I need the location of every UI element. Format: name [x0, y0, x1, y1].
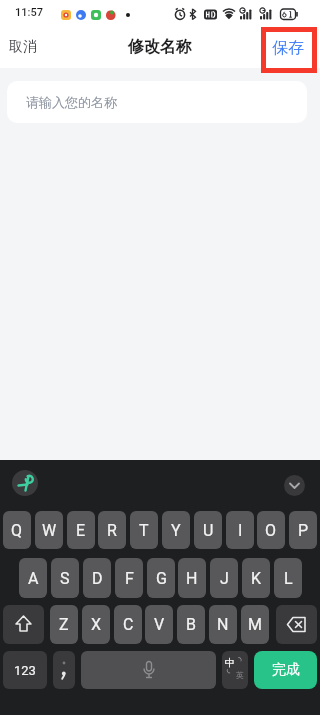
staticText: A — [28, 569, 39, 588]
staticText: 请输入您的名称 — [26, 94, 117, 110]
staticText: 英 — [236, 670, 244, 680]
staticText: 修改名称 — [128, 37, 192, 57]
staticText: W — [42, 521, 57, 540]
staticText: 中 — [225, 656, 235, 669]
staticText: E — [76, 521, 86, 540]
staticText: M — [248, 615, 262, 634]
staticText: G — [156, 569, 167, 588]
staticText: D — [92, 569, 103, 588]
staticText: 取消 — [9, 38, 37, 56]
staticText: K — [251, 569, 262, 588]
staticText: H — [186, 569, 198, 588]
staticText: T — [139, 521, 149, 540]
staticText: V — [154, 615, 165, 634]
staticText: X — [91, 615, 102, 634]
staticText: J — [220, 569, 229, 588]
staticText: C — [123, 615, 134, 634]
staticText: S — [60, 569, 70, 588]
staticText: N — [217, 615, 229, 634]
staticText: 保存 — [272, 38, 304, 58]
staticText: P — [298, 521, 309, 540]
staticText: B — [186, 615, 196, 634]
staticText: Y — [171, 521, 181, 540]
staticText: Z — [59, 615, 69, 634]
staticText: R — [107, 521, 117, 540]
staticText: L — [284, 569, 293, 588]
staticText: O — [265, 521, 277, 540]
staticText: F — [125, 569, 134, 588]
staticText: 11:57 — [15, 6, 43, 19]
staticText: 完成 — [272, 661, 300, 679]
staticText: I — [238, 521, 243, 540]
staticText: U — [203, 521, 214, 540]
staticText: Q — [11, 521, 23, 540]
staticText: 123 — [14, 663, 36, 678]
